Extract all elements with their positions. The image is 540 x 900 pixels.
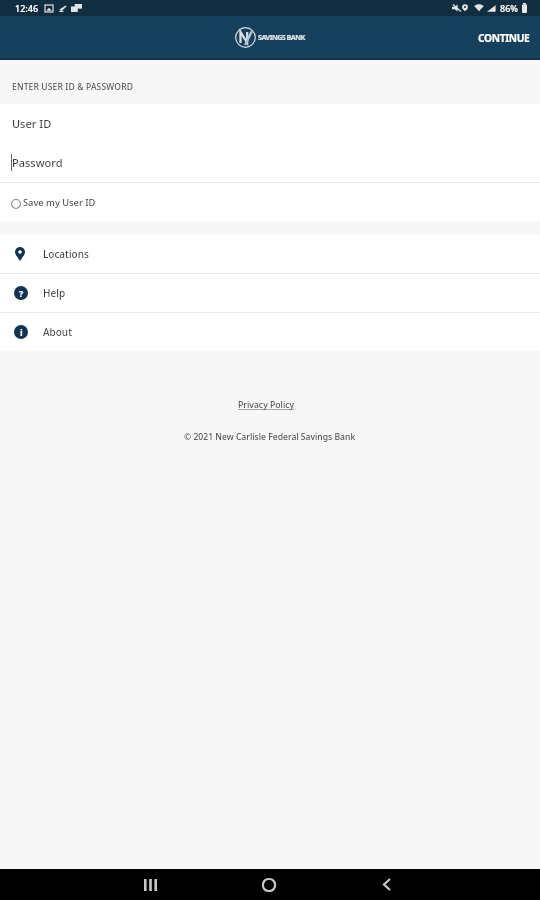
staticText: About [43,325,72,339]
button[interactable]: ? [0,274,540,312]
staticText: 86% [500,2,518,14]
button[interactable]: User ID [0,104,540,143]
button[interactable]: Back [371,869,403,900]
button[interactable]: Save my User ID [0,183,540,221]
staticText: Privacy Policy [238,399,295,411]
button[interactable]: Locations [0,235,540,273]
staticText: SAVINGS BANK [258,32,305,42]
button[interactable]: Password [0,143,540,182]
staticText: ? [19,287,24,299]
button[interactable]: Privacy Policy [232,396,301,414]
button[interactable]: CONTINUE [468,21,540,55]
staticText: Locations [43,247,89,261]
staticText: i [20,326,23,338]
staticText: 12:46 [15,2,39,14]
staticText: Help [43,286,66,300]
button[interactable]: i [0,313,540,351]
staticText: CONTINUE [478,31,530,45]
staticText: Save my User ID [23,196,96,209]
button[interactable]: Recent apps [134,869,166,900]
staticText: ENTER USER ID & PASSWORD [12,81,134,93]
staticText: © 2021 New Carlisle Federal Savings Bank [184,431,356,443]
staticText: Password [12,155,63,170]
staticText: User ID [12,116,52,131]
button[interactable]: Home [253,869,285,900]
